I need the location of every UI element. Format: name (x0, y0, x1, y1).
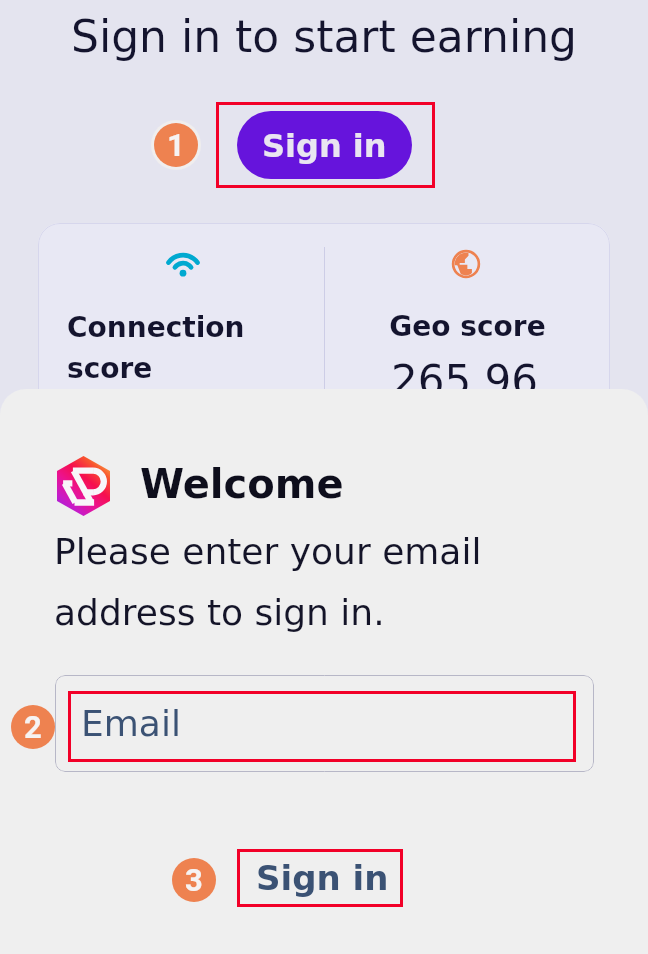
staticText: Sign in (256, 858, 389, 898)
button[interactable]: Email (55, 675, 594, 772)
staticText: Geo score (325, 310, 610, 343)
staticText: Connection score (67, 311, 245, 384)
other: Connection score (164, 248, 202, 281)
staticText: Email (81, 703, 181, 745)
staticText: Welcome (140, 461, 344, 508)
button[interactable]: Sign in (248, 849, 396, 907)
button[interactable]: Sign in (237, 111, 412, 179)
other: Geo score (452, 250, 480, 278)
staticText: 265.96 (322, 356, 607, 405)
staticText: 2 (24, 709, 42, 745)
staticText: 1 (167, 127, 185, 163)
staticText: Please enter your email address to sign … (54, 531, 482, 633)
staticText: Sign in to start earning (0, 11, 648, 62)
staticText: Sign in (262, 127, 387, 164)
staticText: 3 (185, 862, 203, 898)
